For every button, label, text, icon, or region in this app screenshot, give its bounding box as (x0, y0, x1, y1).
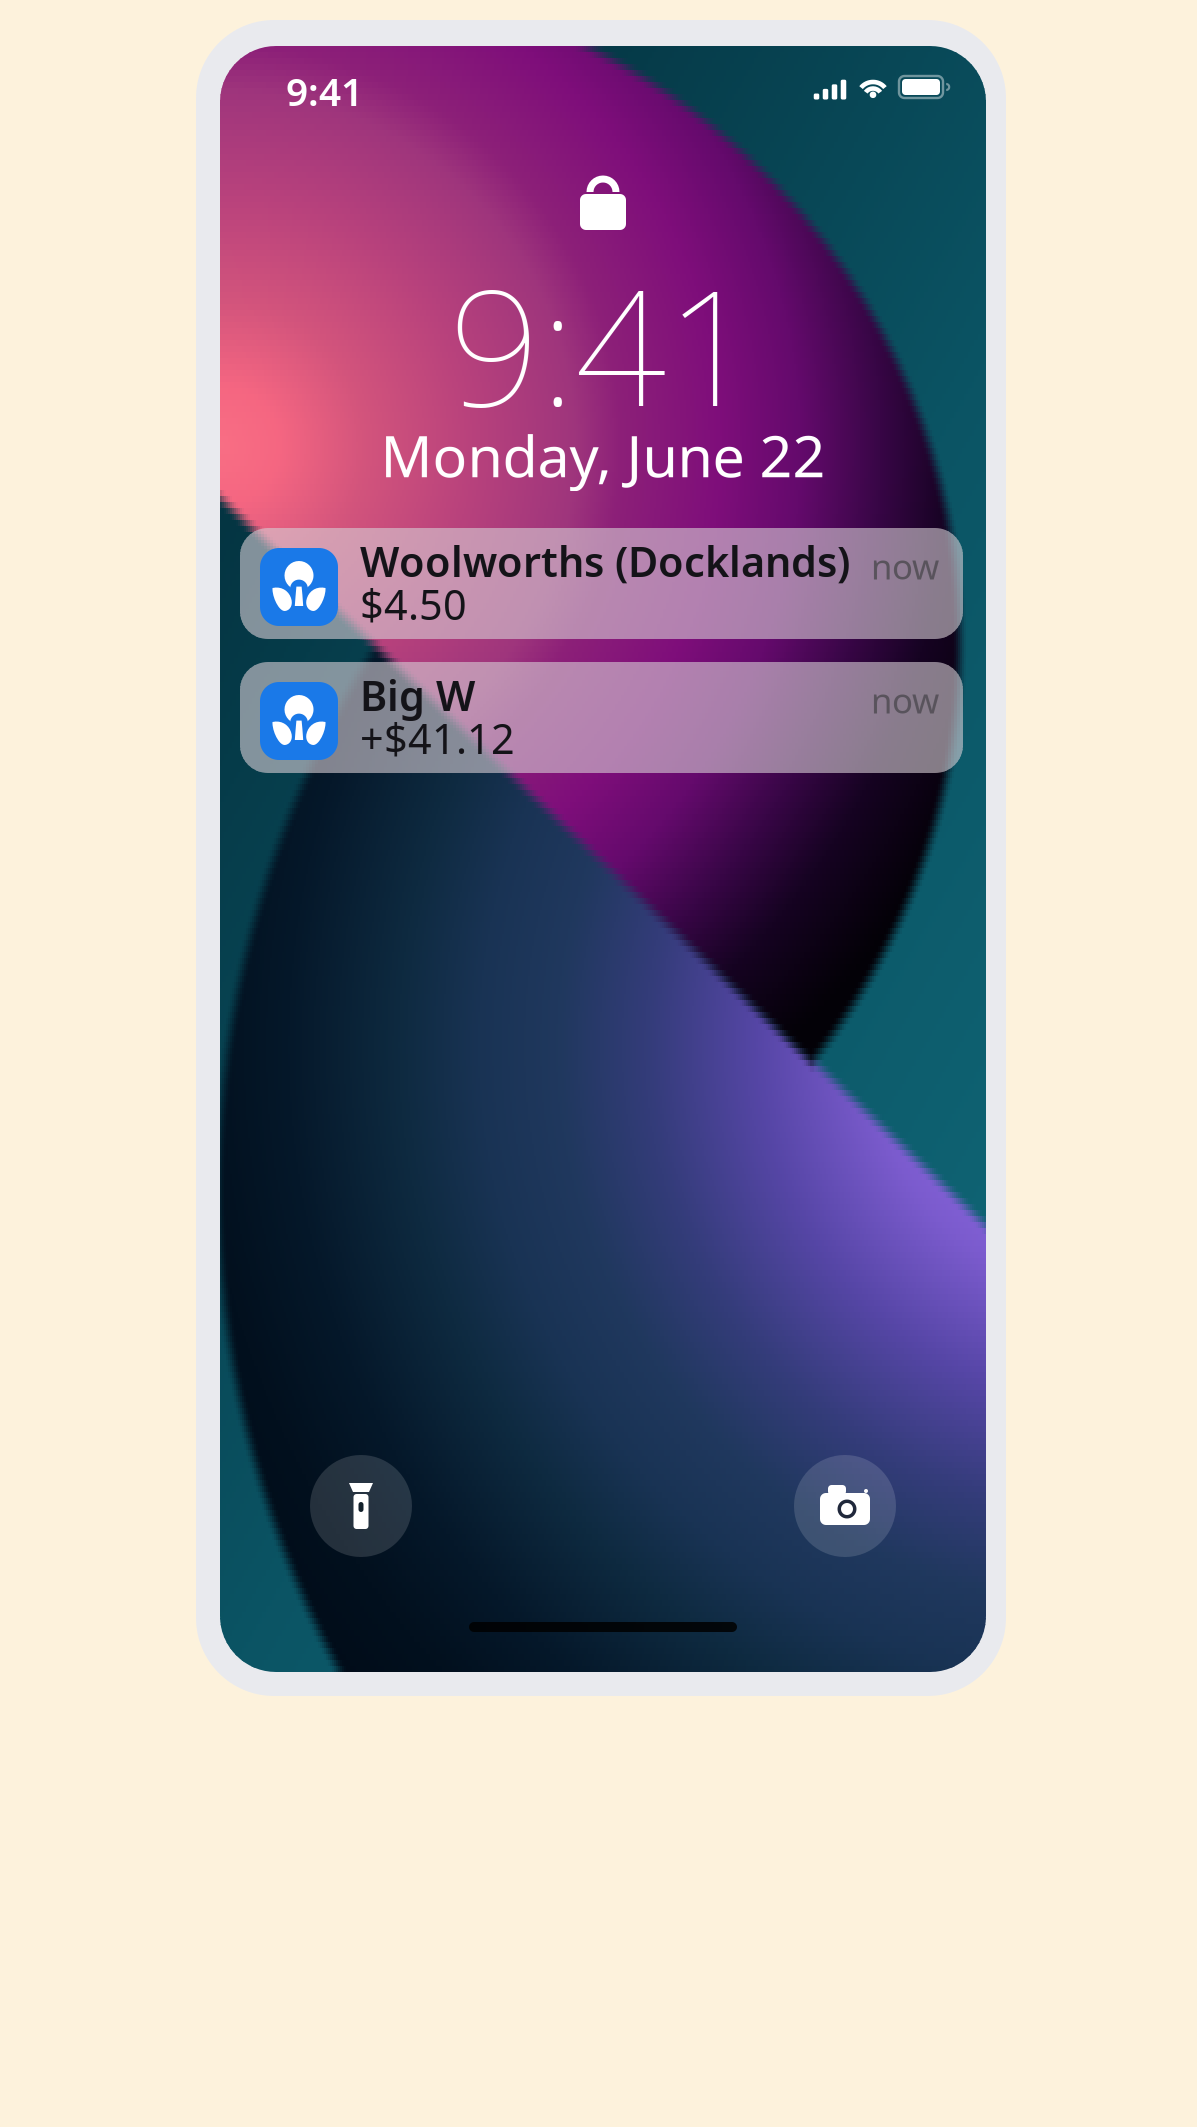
button[interactable]: Woolworths (Docklands) (240, 528, 963, 639)
staticText: now (871, 543, 939, 589)
staticText: +$41.12 (360, 711, 515, 765)
staticText: 9:41 (449, 238, 757, 450)
button[interactable]: Flashlight (310, 1455, 412, 1557)
staticText: Monday, June 22 (380, 417, 825, 493)
staticText: 9:41 (286, 65, 363, 117)
staticText: $4.50 (360, 577, 467, 631)
staticText: Woolworths (Docklands) (360, 534, 850, 588)
staticText: Big W (360, 668, 475, 722)
staticText: now (871, 677, 939, 723)
button[interactable]: Camera (794, 1455, 896, 1557)
button[interactable]: Big W (240, 662, 963, 773)
